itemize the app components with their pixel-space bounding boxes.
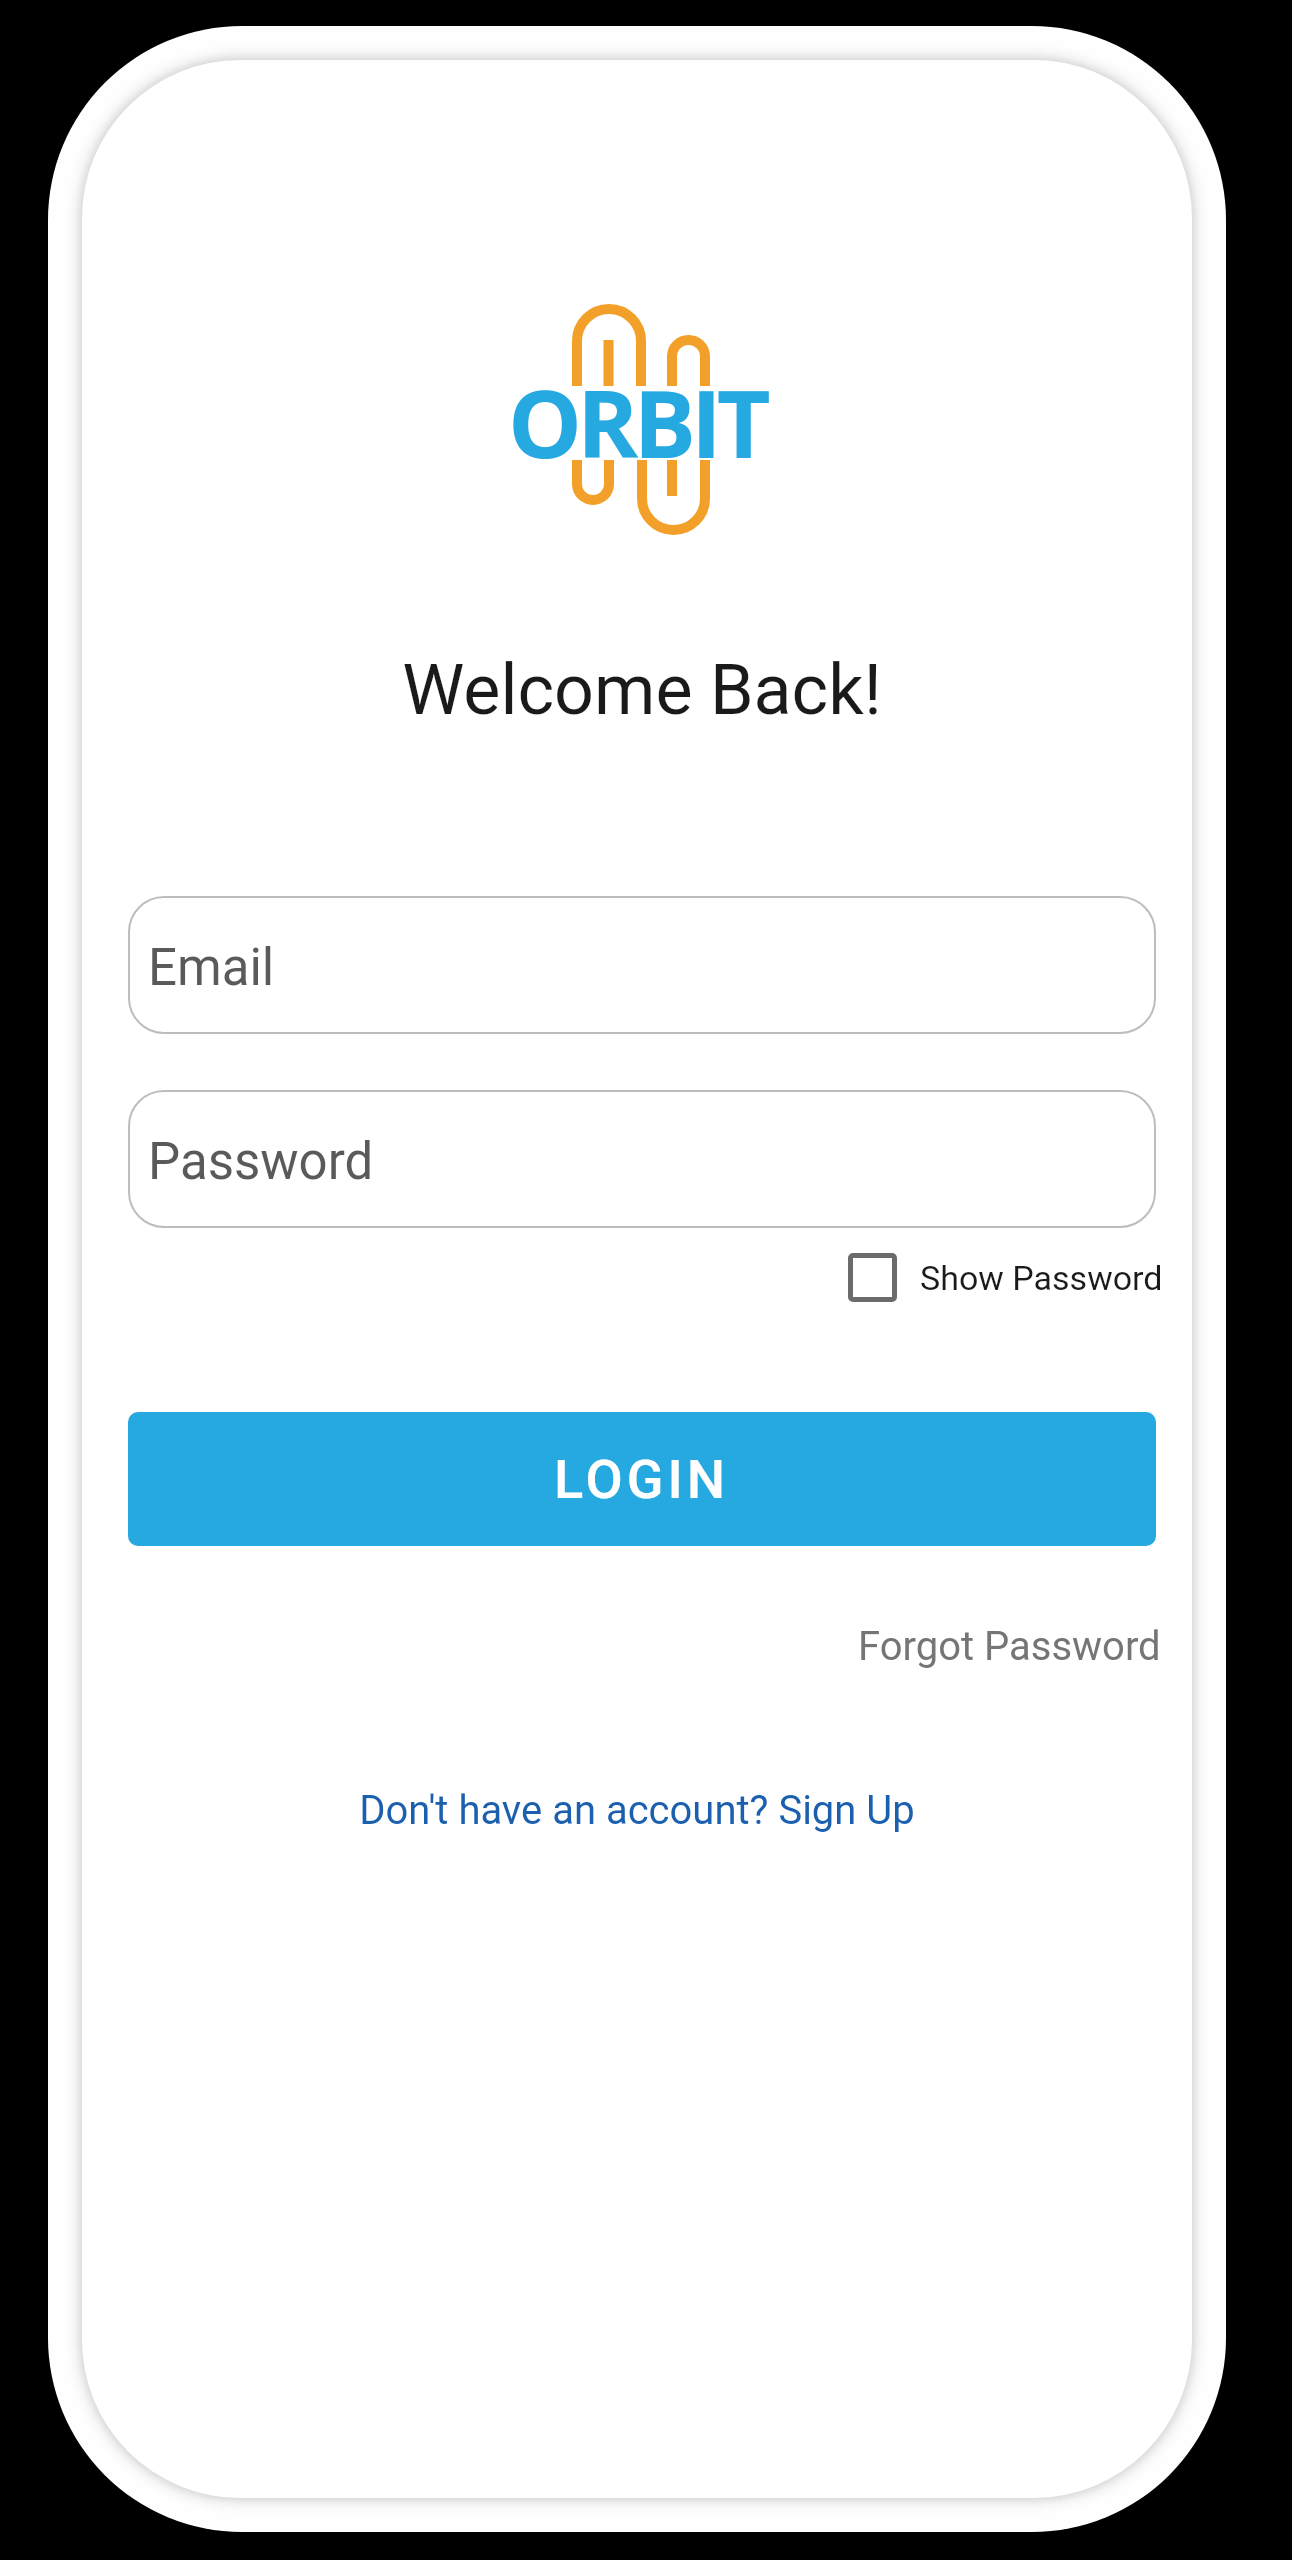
button[interactable]: Email (128, 896, 1156, 1034)
button[interactable]: Password (128, 1090, 1156, 1228)
staticText: ORBIT (508, 359, 766, 486)
staticText: Password (148, 1132, 374, 1192)
staticText: Email (148, 938, 275, 998)
staticText: Show Password (920, 1258, 1163, 1298)
staticText: Forgot Password (858, 1623, 1161, 1670)
button[interactable]: Don't have an account? Sign Up (82, 1787, 1192, 1834)
staticText: LOGIN (554, 1448, 730, 1511)
other: Orbit logo (500, 300, 780, 544)
button[interactable]: Forgot Password (858, 1623, 1161, 1670)
button[interactable]: Show Password (848, 1253, 1163, 1302)
staticText: Welcome Back! (87, 649, 1192, 731)
staticText: Don't have an account? Sign Up (82, 1787, 1192, 1834)
button[interactable]: LOGIN (128, 1412, 1156, 1546)
